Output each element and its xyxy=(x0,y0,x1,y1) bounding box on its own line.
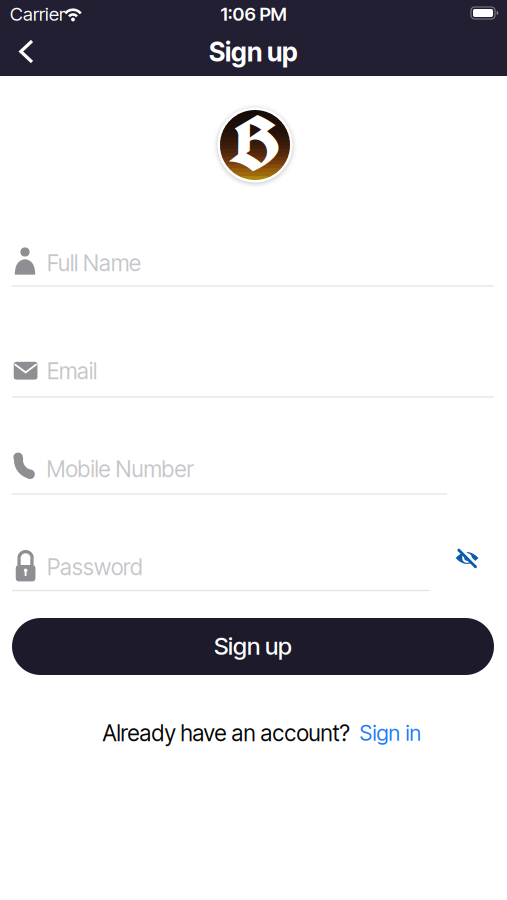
staticText: Carrier xyxy=(10,3,65,25)
staticText: Sign in xyxy=(359,720,421,746)
staticText: Sign up xyxy=(214,631,292,660)
staticText: Mobile Number xyxy=(46,455,193,482)
staticText: Email xyxy=(47,357,97,384)
staticText: Already have an account? xyxy=(102,719,349,746)
staticText: 1:06 PM xyxy=(220,3,286,25)
staticText: Full Name xyxy=(47,249,141,276)
staticText: Sign up xyxy=(209,36,298,68)
staticText: Password xyxy=(47,553,143,580)
staticText: B xyxy=(228,95,281,192)
